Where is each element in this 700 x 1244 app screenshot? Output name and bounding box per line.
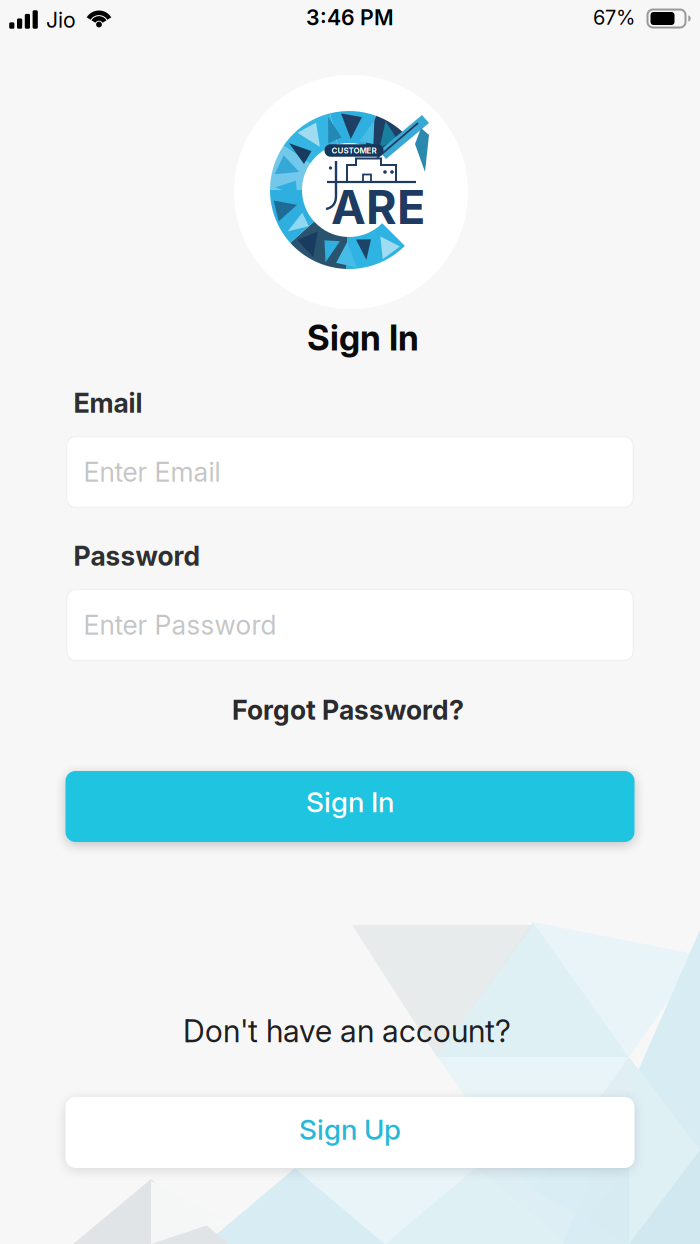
button[interactable]: Sign In <box>65 771 634 842</box>
button[interactable]: Enter Email <box>67 436 633 507</box>
button[interactable]: Forgot Password? <box>232 694 464 726</box>
button[interactable]: Enter Password <box>67 589 633 660</box>
staticText: Forgot Password? <box>232 694 464 726</box>
staticText: Email <box>73 387 142 419</box>
staticText: Sign In <box>306 785 394 818</box>
staticText: Password <box>73 540 200 572</box>
staticText: 67% <box>593 6 635 29</box>
staticText: 3:46 PM <box>306 5 394 30</box>
staticText: CUSTOMER <box>331 146 376 155</box>
staticText: Enter Password <box>83 609 276 641</box>
staticText: ARE <box>331 179 425 235</box>
staticText: Sign In <box>307 318 419 358</box>
staticText: Jio <box>46 7 76 33</box>
button[interactable]: Sign Up <box>65 1097 634 1168</box>
staticText: Sign Up <box>299 1113 401 1146</box>
staticText: Don't have an account? <box>183 1013 511 1049</box>
staticText: Enter Email <box>83 456 220 488</box>
